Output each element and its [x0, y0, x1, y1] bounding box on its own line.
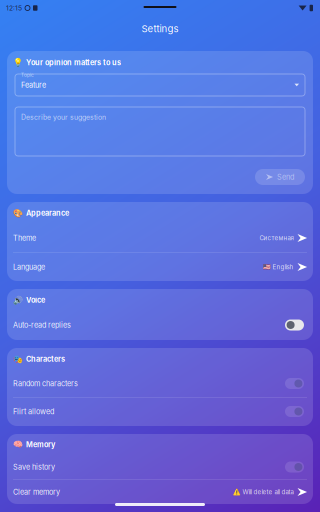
staticText: Memory	[26, 440, 55, 449]
staticText: ⚠️ Will delete all data	[232, 488, 293, 496]
button[interactable]: Theme	[7, 224, 313, 252]
staticText: Send	[277, 173, 294, 181]
staticText: 🇺🇸 English	[262, 263, 293, 271]
staticText: 🎭	[13, 354, 23, 364]
staticText: Topic	[21, 72, 34, 78]
staticText: Your opinion matters to us	[26, 58, 121, 67]
staticText: 💡	[13, 58, 23, 67]
staticText: Auto-read replies	[13, 321, 71, 329]
button[interactable]: Clear memory	[7, 480, 313, 504]
staticText: 🎨	[13, 208, 23, 218]
staticText: 🧠	[13, 440, 23, 449]
staticText: Language	[13, 263, 45, 271]
staticText: Appearance	[26, 209, 69, 217]
button[interactable]: Save history	[285, 461, 304, 472]
staticText: 12:15	[6, 4, 22, 12]
button[interactable]: Send	[255, 169, 305, 185]
staticText: Theme	[13, 234, 36, 242]
staticText: Системная	[259, 234, 293, 242]
staticText: Flirt allowed	[13, 407, 54, 416]
staticText: Settings	[141, 23, 178, 35]
button[interactable]: Auto-read replies	[285, 319, 304, 330]
button[interactable]: Flirt allowed	[285, 406, 304, 417]
staticText: Voice	[26, 296, 45, 304]
staticText: 🔊	[13, 295, 23, 305]
button[interactable]: Random characters	[285, 378, 304, 389]
staticText: Feature	[21, 81, 46, 89]
staticText: Random characters	[13, 379, 78, 388]
button[interactable]: Language	[7, 253, 313, 281]
staticText: Characters	[26, 355, 65, 363]
staticText: Describe your suggestion	[21, 113, 106, 121]
staticText: Save history	[13, 463, 55, 471]
staticText: Clear memory	[13, 488, 60, 496]
